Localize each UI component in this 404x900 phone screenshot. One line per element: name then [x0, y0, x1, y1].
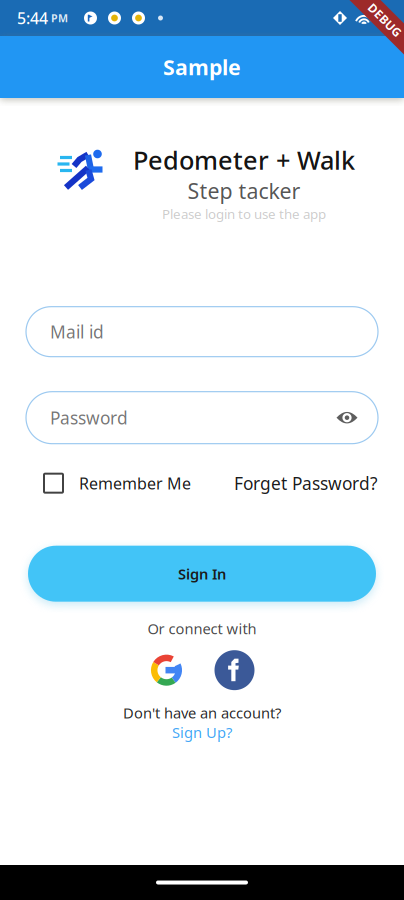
button[interactable]: Sign Up? — [172, 723, 232, 742]
staticText: Password — [50, 406, 128, 429]
button[interactable]: Mail id — [26, 307, 378, 357]
button[interactable]: Password — [26, 392, 378, 444]
button[interactable]: Sign In — [28, 546, 376, 602]
button[interactable]: Sign in with Google — [149, 653, 183, 687]
staticText: Don't have an account? — [123, 703, 281, 723]
staticText: Sample — [163, 53, 241, 81]
staticText: 5:44 — [17, 7, 48, 29]
button[interactable]: Sign in with Facebook — [214, 650, 254, 690]
staticText: Mail id — [50, 320, 104, 343]
staticText: Pedometer + Walk — [133, 143, 355, 177]
staticText: Please login to use the app — [162, 205, 326, 223]
staticText: Forget Password? — [234, 472, 378, 495]
staticText: PM — [48, 11, 68, 25]
staticText: Sign In — [178, 564, 226, 583]
staticText: Or connect with — [147, 619, 256, 638]
staticText: Remember Me — [79, 473, 191, 494]
button[interactable]: Forget Password? — [234, 472, 378, 495]
button[interactable]: Remember Me — [44, 473, 191, 494]
staticText: Step tacker — [187, 177, 300, 205]
staticText: Sign Up? — [172, 723, 232, 742]
staticText: DEBUG — [364, 12, 404, 28]
